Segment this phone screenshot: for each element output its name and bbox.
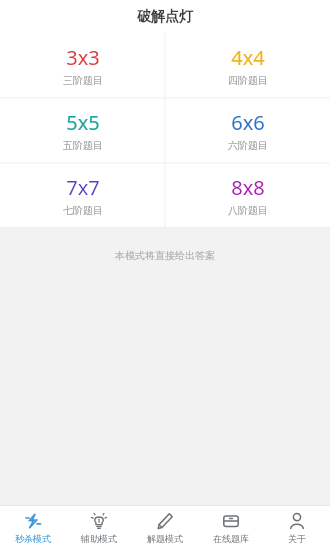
staticText: 七阶题目 bbox=[63, 204, 103, 217]
staticText: 本模式将直接给出答案 bbox=[115, 249, 215, 262]
staticText: 3x3 bbox=[66, 44, 100, 71]
staticText: 解题模式 bbox=[147, 533, 183, 544]
staticText: 五阶题目 bbox=[63, 139, 103, 152]
staticText: 5x5 bbox=[66, 109, 100, 136]
button[interactable]: 6x6 bbox=[165, 98, 330, 163]
button[interactable]: 关于 bbox=[264, 505, 330, 550]
staticText: 四阶题目 bbox=[228, 74, 268, 87]
staticText: 辅助模式 bbox=[81, 533, 117, 544]
button[interactable]: 3x3 bbox=[0, 33, 165, 98]
staticText: 8x8 bbox=[231, 174, 265, 201]
button[interactable]: 4x4 bbox=[165, 33, 330, 98]
staticText: 在线题库 bbox=[213, 533, 249, 544]
button[interactable]: 解题模式 bbox=[132, 505, 198, 550]
staticText: 八阶题目 bbox=[228, 204, 268, 217]
staticText: 六阶题目 bbox=[228, 139, 268, 152]
staticText: 4x4 bbox=[231, 44, 265, 71]
staticText: 关于 bbox=[288, 533, 306, 544]
button[interactable]: 5x5 bbox=[0, 98, 165, 163]
staticText: 破解点灯 bbox=[137, 8, 193, 26]
staticText: 6x6 bbox=[231, 109, 265, 136]
button[interactable]: 在线题库 bbox=[198, 505, 264, 550]
staticText: 秒杀模式 bbox=[15, 533, 51, 544]
button[interactable]: 7x7 bbox=[0, 163, 165, 228]
button[interactable]: 8x8 bbox=[165, 163, 330, 228]
button[interactable]: 秒杀模式 bbox=[0, 505, 66, 550]
staticText: 三阶题目 bbox=[63, 74, 103, 87]
button[interactable]: 辅助模式 bbox=[66, 505, 132, 550]
staticText: 7x7 bbox=[66, 174, 100, 201]
